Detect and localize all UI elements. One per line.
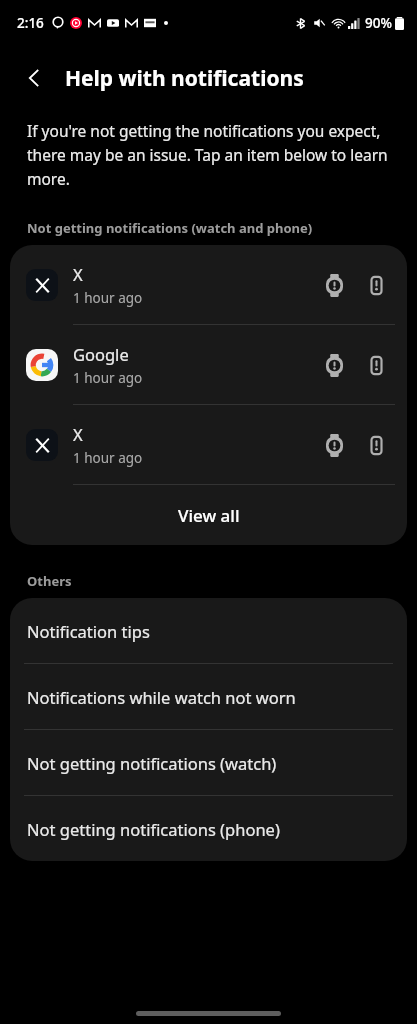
staticText: X [73,263,83,285]
button[interactable]: Watch notification issue [317,348,351,382]
button[interactable]: Google [10,325,407,405]
button[interactable]: Not getting notifications (phone) [10,796,407,861]
button[interactable]: View all [10,485,407,545]
button[interactable]: Watch notification issue [317,268,351,302]
button[interactable]: Watch notification issue [317,428,351,462]
button[interactable]: Back [12,56,56,100]
staticText: If you're not getting the notifications … [27,120,393,189]
staticText: View all [178,504,240,527]
staticText: Not getting notifications (phone) [27,818,280,840]
staticText: Help with notifications [65,64,304,93]
staticText: Not getting notifications (watch) [27,752,277,774]
staticText: Others [27,572,72,590]
staticText: Not getting notifications (watch and pho… [27,219,313,237]
button[interactable]: X [10,245,407,325]
staticText: X [73,423,83,445]
staticText: Notifications while watch not worn [27,686,296,708]
staticText: Notification tips [27,620,150,642]
staticText: 1 hour ago [73,449,143,467]
button[interactable]: Not getting notifications (watch) [10,730,407,796]
button[interactable]: Phone notification issue [359,268,393,302]
staticText: Google [73,343,129,365]
button[interactable]: Phone notification issue [359,428,393,462]
button[interactable]: Phone notification issue [359,348,393,382]
button[interactable]: X [10,405,407,485]
staticText: 90% [365,14,392,32]
button[interactable]: Notification tips [10,598,407,664]
staticText: 2:16 [17,14,44,32]
staticText: 1 hour ago [73,289,143,307]
button[interactable]: Notifications while watch not worn [10,664,407,730]
staticText: 1 hour ago [73,369,143,387]
